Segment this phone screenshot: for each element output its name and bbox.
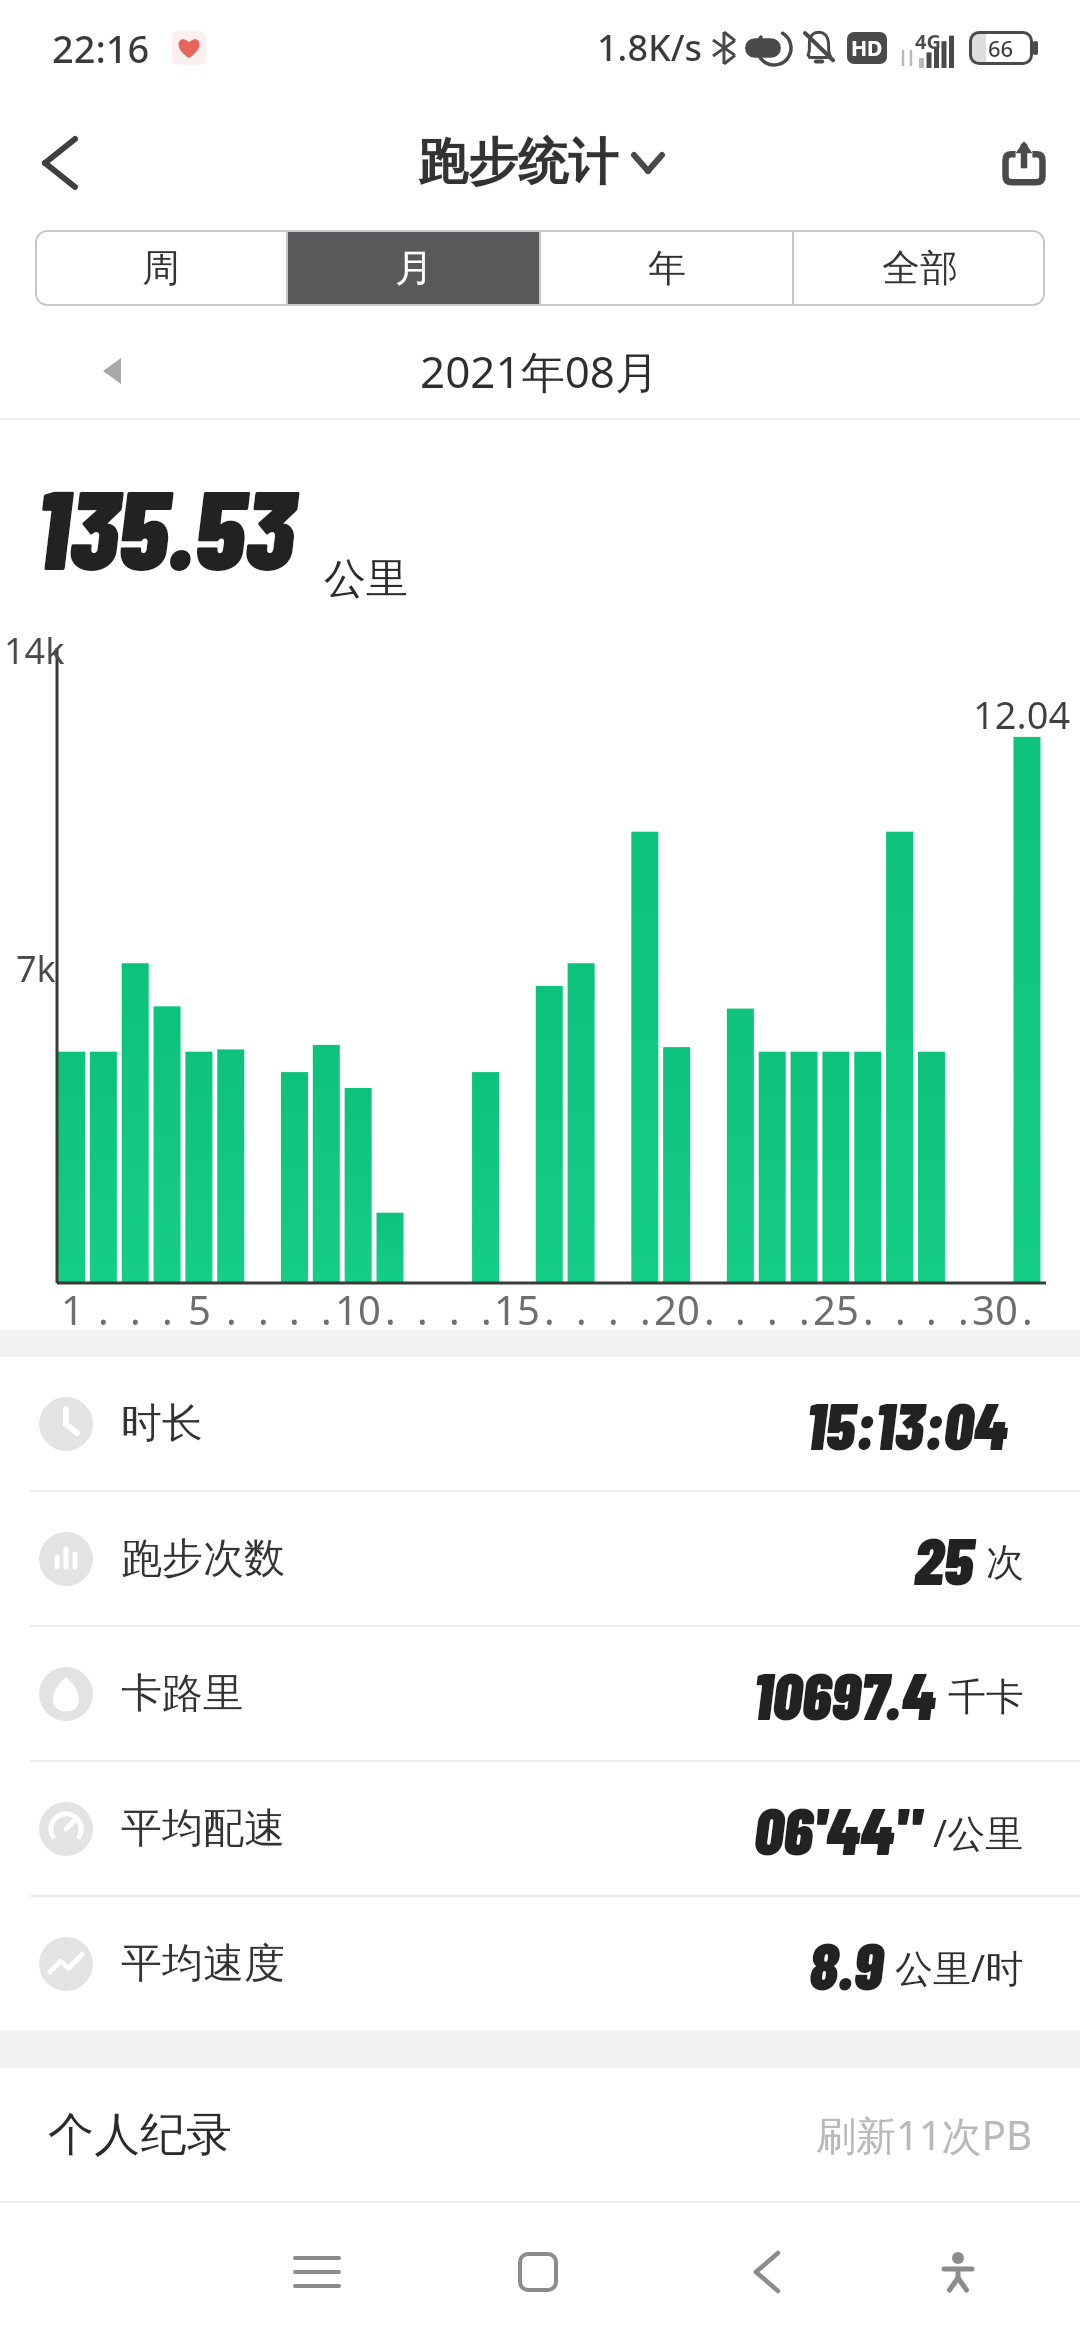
- button[interactable]: [508, 2242, 568, 2302]
- staticText: 10: [335, 1282, 381, 1330]
- staticText: 66: [988, 33, 1014, 63]
- staticText: 公里: [324, 553, 408, 606]
- button[interactable]: [996, 135, 1052, 191]
- staticText: .: [735, 1282, 746, 1330]
- staticText: 12.04: [973, 688, 1071, 740]
- staticText: 5: [188, 1282, 211, 1330]
- staticText: .: [799, 1282, 810, 1330]
- staticText: .: [1022, 1282, 1033, 1330]
- staticText: 全部: [882, 244, 958, 292]
- button[interactable]: 年: [541, 230, 792, 306]
- staticText: 14k: [4, 626, 65, 675]
- staticText: 20: [654, 1282, 700, 1330]
- staticText: .: [926, 1282, 937, 1330]
- staticText: 7k: [16, 944, 56, 993]
- staticText: .: [608, 1282, 619, 1330]
- staticText: 25: [914, 1519, 974, 1598]
- button[interactable]: 全部: [794, 230, 1045, 306]
- staticText: .: [417, 1282, 428, 1330]
- staticText: 30: [972, 1282, 1018, 1330]
- staticText: .: [640, 1282, 651, 1330]
- staticText: 周: [142, 244, 180, 292]
- staticText: 公里/时: [895, 1941, 1024, 1993]
- button[interactable]: 平均配速: [0, 1762, 1080, 1895]
- button[interactable]: [737, 2242, 797, 2302]
- button[interactable]: 跑步次数: [0, 1492, 1080, 1625]
- staticText: .: [130, 1282, 141, 1330]
- staticText: .: [98, 1282, 109, 1330]
- staticText: 刷新11次PB: [816, 2107, 1032, 2162]
- staticText: 1: [61, 1282, 84, 1330]
- staticText: 次: [986, 1538, 1024, 1586]
- staticText: 10697.4: [753, 1654, 936, 1733]
- staticText: 4G: [915, 28, 941, 55]
- button[interactable]: [928, 2242, 988, 2302]
- staticText: .: [767, 1282, 778, 1330]
- staticText: .: [958, 1282, 969, 1330]
- staticText: 06'44": [754, 1789, 921, 1868]
- staticText: 千卡: [948, 1673, 1024, 1721]
- button[interactable]: [287, 2242, 347, 2302]
- button[interactable]: 月: [288, 230, 539, 306]
- staticText: HD: [851, 34, 883, 63]
- staticText: 15: [494, 1282, 540, 1330]
- staticText: .: [544, 1282, 555, 1330]
- staticText: .: [289, 1282, 300, 1330]
- staticText: .: [162, 1282, 173, 1330]
- staticText: 2021年08月: [420, 341, 660, 401]
- button[interactable]: 卡路里: [0, 1627, 1080, 1760]
- staticText: 15:13:04: [806, 1384, 1008, 1463]
- staticText: 25: [813, 1282, 859, 1330]
- button[interactable]: [30, 133, 90, 193]
- button[interactable]: 个人纪录: [0, 2068, 1080, 2201]
- staticText: .: [226, 1282, 237, 1330]
- staticText: .: [321, 1282, 332, 1330]
- staticText: 平均速度: [121, 1938, 285, 1990]
- staticText: 卡路里: [121, 1668, 244, 1720]
- staticText: .: [258, 1282, 269, 1330]
- button[interactable]: 跑步统计: [418, 131, 662, 194]
- staticText: 跑步统计: [418, 131, 618, 194]
- button[interactable]: [88, 347, 136, 395]
- staticText: .: [704, 1282, 715, 1330]
- staticText: 平均配速: [121, 1803, 285, 1855]
- staticText: 135.53: [36, 458, 294, 592]
- staticText: .: [481, 1282, 492, 1330]
- staticText: 月: [395, 244, 433, 292]
- staticText: 个人纪录: [48, 2106, 232, 2164]
- staticText: 1.8K/s: [597, 23, 703, 72]
- staticText: .: [863, 1282, 874, 1330]
- staticText: 时长: [121, 1398, 203, 1450]
- staticText: .: [385, 1282, 396, 1330]
- staticText: .: [449, 1282, 460, 1330]
- staticText: 8.9: [809, 1924, 883, 2003]
- staticText: 22:16: [52, 22, 150, 74]
- staticText: /公里: [933, 1806, 1024, 1858]
- staticText: .: [895, 1282, 906, 1330]
- button[interactable]: 周: [35, 230, 286, 306]
- staticText: 跑步次数: [121, 1533, 285, 1585]
- staticText: 年: [648, 244, 686, 292]
- button[interactable]: 时长: [0, 1357, 1080, 1490]
- staticText: .: [576, 1282, 587, 1330]
- button[interactable]: 平均速度: [0, 1897, 1080, 2030]
